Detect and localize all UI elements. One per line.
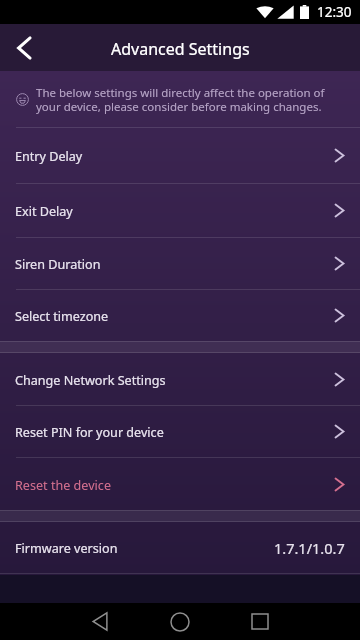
staticText: 1.7.1/1.0.7 — [274, 538, 345, 558]
button[interactable]: Reset the device — [0, 458, 360, 510]
staticText: Change Network Settings — [15, 372, 166, 389]
button[interactable]: Siren Duration — [0, 238, 360, 289]
button[interactable]: Change Network Settings — [0, 353, 360, 405]
staticText: Firmware version — [15, 540, 118, 557]
staticText: Advanced Settings — [111, 38, 250, 60]
staticText: Siren Duration — [15, 256, 101, 273]
button[interactable]: Recents — [220, 603, 300, 640]
staticText: Entry Delay — [15, 148, 83, 165]
button[interactable]: Home — [140, 603, 220, 640]
staticText: Exit Delay — [15, 203, 73, 220]
button[interactable]: Entry Delay — [0, 128, 360, 183]
button[interactable]: Back — [60, 603, 140, 640]
staticText: Reset PIN for your device — [15, 424, 164, 441]
button[interactable]: Exit Delay — [0, 184, 360, 237]
staticText: 12:30 — [317, 3, 352, 21]
staticText: The below settings will directly affect … — [36, 85, 344, 114]
button[interactable]: Reset PIN for your device — [0, 406, 360, 457]
staticText: Select timezone — [15, 308, 109, 325]
button[interactable]: Back — [0, 24, 48, 71]
staticText: Reset the device — [15, 477, 111, 494]
button[interactable]: Select timezone — [0, 290, 360, 341]
